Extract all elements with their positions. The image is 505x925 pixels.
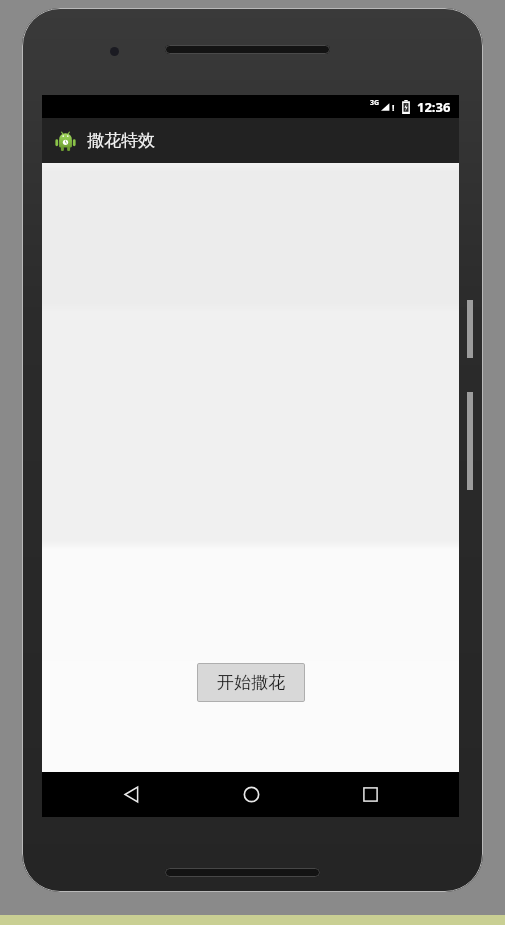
staticText: 3G [370,98,380,108]
staticText: ! [392,101,395,113]
button[interactable]: Recent apps [340,772,400,817]
staticText: 12:36 [417,98,451,116]
staticText: 开始撒花 [217,672,285,693]
staticText: 撒花特效 [87,130,155,151]
button[interactable]: Back [101,772,161,817]
button[interactable]: 开始撒花 [197,663,305,702]
button[interactable]: Home [221,772,281,817]
